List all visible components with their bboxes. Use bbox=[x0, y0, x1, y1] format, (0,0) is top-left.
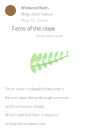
staticText: Ferns unfurl in dappled light where bbox=[5, 86, 64, 91]
staticText: Wildwood Notes bbox=[21, 5, 49, 10]
staticText: the soil stays damp through summer bbox=[5, 95, 69, 100]
staticText: Ridge observations bbox=[21, 11, 53, 17]
staticText: Ferns of the slope bbox=[12, 25, 55, 32]
staticText: illustrated guide bbox=[36, 33, 63, 38]
staticText: May 14 · 4 min bbox=[21, 18, 47, 23]
staticText: Mulch with leaf litter in autumn bbox=[5, 112, 58, 117]
staticText: and frost leaves slowly. bbox=[5, 104, 45, 109]
button[interactable]: Wildwood Notes bbox=[0, 0, 99, 23]
staticText: to keep the crowns cool. bbox=[5, 121, 46, 126]
